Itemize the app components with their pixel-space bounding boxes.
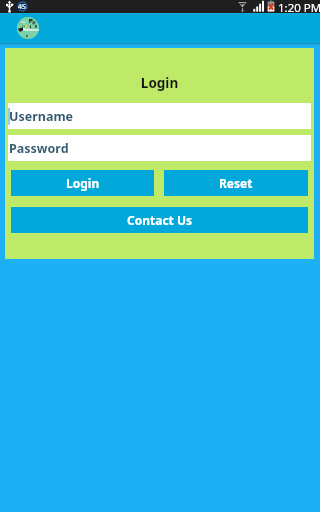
staticText: 1:20 PM: [278, 0, 320, 13]
button[interactable]: Login: [11, 170, 154, 196]
staticText: Username: [9, 108, 74, 125]
staticText: Login: [66, 175, 100, 191]
staticText: 45: [18, 2, 27, 12]
other: Notifications 45: [17, 0, 28, 13]
staticText: Contact Us: [127, 212, 193, 228]
button[interactable]: App logo: [17, 17, 39, 39]
other: USB connected: [6, 0, 13, 13]
button[interactable]: Password: [8, 135, 311, 161]
button[interactable]: Contact Us: [11, 207, 308, 233]
staticText: Balance: [23, 27, 39, 33]
staticText: Reset: [219, 175, 253, 191]
button[interactable]: Reset: [164, 170, 308, 196]
button[interactable]: Username: [8, 103, 311, 129]
staticText: Password: [9, 140, 69, 157]
staticText: Login: [5, 74, 314, 92]
